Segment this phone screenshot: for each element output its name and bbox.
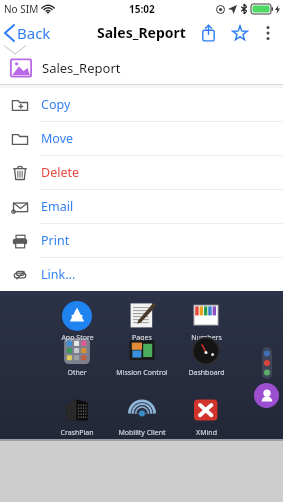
staticText: Move [41, 130, 74, 147]
button[interactable]: Mobility Client [110, 396, 174, 438]
button[interactable]: Delete [0, 156, 283, 189]
button[interactable]: Pages [110, 301, 174, 343]
button[interactable]: XMind [174, 396, 238, 438]
staticText: Email [41, 198, 74, 215]
button[interactable]: Print [0, 224, 283, 257]
staticText: CrashPlan [60, 428, 94, 438]
staticText: Dashboard [188, 368, 225, 378]
staticText: App Store [61, 333, 94, 343]
staticText: Print [41, 232, 70, 249]
button[interactable]: App Store [45, 301, 109, 343]
staticText: Numbers [191, 333, 222, 343]
button[interactable]: Link... [0, 258, 283, 291]
button[interactable]: CrashPlan [45, 396, 109, 438]
button[interactable]: Copy [0, 88, 283, 121]
button[interactable]: Share [195, 20, 221, 46]
staticText: Mission Control [116, 368, 168, 378]
staticText: Sales_Report [42, 59, 121, 77]
button[interactable]: Favorite [227, 20, 253, 46]
staticText: XMind [196, 428, 217, 438]
staticText: No SIM [4, 2, 39, 16]
staticText: Pages [132, 333, 152, 343]
button[interactable]: Other [45, 336, 109, 378]
button[interactable]: Move [0, 122, 283, 155]
button[interactable]: Sales_Report [0, 51, 283, 84]
button[interactable]: Numbers [174, 301, 238, 343]
staticText: 15:02 [129, 2, 155, 16]
staticText: Mobility Client [118, 428, 166, 438]
button[interactable]: Mission Control [110, 336, 174, 378]
button[interactable]: Back [0, 17, 59, 48]
button[interactable]: More options [257, 22, 279, 44]
button[interactable]: User account [254, 383, 279, 408]
staticText: Copy [41, 96, 71, 113]
button[interactable]: Email [0, 190, 283, 223]
staticText: Other [67, 368, 87, 378]
staticText: Delete [41, 164, 80, 181]
staticText: Back [17, 23, 51, 43]
staticText: Link... [41, 266, 76, 283]
button[interactable]: Dashboard [174, 336, 238, 378]
staticText: Sales_Report [97, 23, 186, 42]
